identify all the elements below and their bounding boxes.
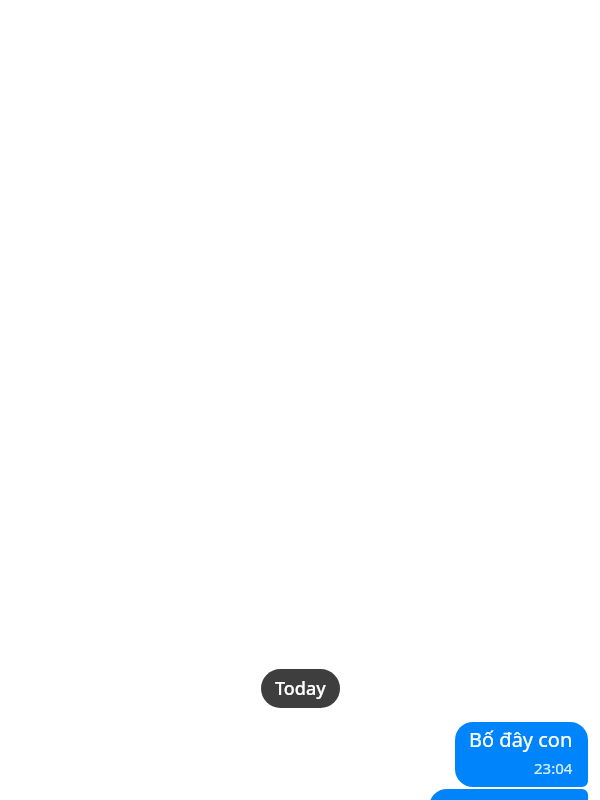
staticText: Bố đây con bbox=[469, 728, 573, 752]
staticText: Today bbox=[275, 678, 326, 700]
button[interactable]: Bố đây con bbox=[455, 722, 588, 787]
staticText: 23:04 bbox=[534, 761, 573, 778]
button[interactable]: Con nghe đây bbox=[429, 789, 588, 800]
button[interactable]: Today bbox=[261, 669, 340, 708]
